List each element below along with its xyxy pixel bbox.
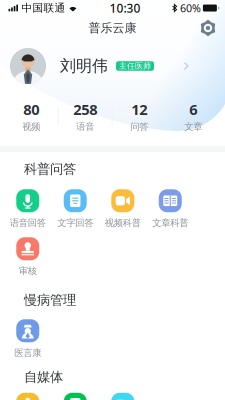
button[interactable]	[99, 390, 146, 400]
staticText: 语音	[76, 121, 94, 132]
staticText: 80	[23, 99, 39, 119]
button[interactable]: 80	[4, 101, 58, 131]
staticText: 文字回答	[57, 217, 93, 229]
staticText: 主任医师	[119, 61, 151, 71]
staticText: 12	[131, 99, 147, 119]
staticText: 语音回答	[10, 217, 46, 229]
staticText: 6	[189, 99, 197, 119]
staticText: 医言康	[14, 347, 41, 359]
button[interactable]: 6	[166, 101, 220, 131]
staticText: 10:30	[109, 0, 140, 16]
staticText: 文章	[184, 121, 202, 132]
staticText: 中国联通	[21, 1, 65, 14]
staticText: 审核	[19, 265, 37, 277]
button[interactable]: 刘明伟	[0, 44, 225, 88]
staticText: 普乐云康	[88, 21, 136, 35]
staticText: 自媒体	[24, 369, 63, 385]
button[interactable]: 258	[58, 101, 112, 131]
button[interactable]: 审核	[4, 234, 51, 280]
staticText: 文章科普	[152, 217, 188, 229]
button[interactable]: 医言康	[4, 316, 51, 362]
button[interactable]: 文章科普	[146, 186, 194, 232]
staticText: 258	[73, 99, 97, 119]
staticText: 慢病管理	[24, 292, 76, 308]
button[interactable]: 语音回答	[4, 186, 51, 232]
button[interactable]: 12	[112, 101, 166, 131]
staticText: 科普问答	[24, 161, 76, 177]
button[interactable]	[51, 390, 99, 400]
button[interactable]	[4, 390, 51, 400]
staticText: 60%	[180, 1, 201, 15]
button[interactable]: 设置	[195, 16, 221, 40]
staticText: 视频	[22, 121, 40, 132]
staticText: 刘明伟	[60, 56, 108, 76]
button[interactable]: 视频科普	[99, 186, 146, 232]
staticText: 视频科普	[105, 217, 141, 229]
button[interactable]: 文字回答	[51, 186, 99, 232]
staticText: 问答	[130, 121, 148, 132]
